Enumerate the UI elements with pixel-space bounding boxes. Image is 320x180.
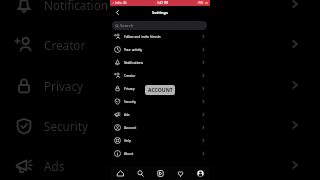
- staticText: Security: [124, 100, 136, 104]
- button[interactable]: Home: [114, 167, 126, 179]
- staticText: Account: [124, 126, 137, 130]
- staticText: Privacy: [44, 78, 83, 94]
- button[interactable]: About: [110, 147, 210, 160]
- staticText: Privacy: [124, 87, 135, 91]
- staticText: Help: [124, 139, 131, 143]
- staticText: ACCOUNT: [148, 87, 173, 94]
- staticText: India: [115, 1, 122, 5]
- staticText: Follow and invite friends: [124, 35, 161, 39]
- button[interactable]: Search: [112, 21, 207, 30]
- button[interactable]: Security: [110, 95, 210, 108]
- button[interactable]: Help: [110, 134, 210, 147]
- staticText: 4G: [123, 1, 127, 5]
- button[interactable]: Follow and invite friends: [110, 30, 210, 43]
- staticText: Ads: [124, 113, 130, 117]
- staticText: Settings: [152, 10, 168, 15]
- staticText: 75%: [198, 1, 204, 5]
- staticText: Notifications: [44, 0, 114, 13]
- button[interactable]: Activity: [174, 167, 186, 179]
- button[interactable]: Profile: [194, 167, 206, 179]
- button[interactable]: Privacy: [110, 82, 210, 95]
- staticText: Your activity: [124, 48, 143, 52]
- button[interactable]: Reels: [154, 167, 166, 179]
- staticText: Creator: [124, 74, 136, 78]
- staticText: Notifications: [124, 61, 143, 65]
- button[interactable]: Notifications: [110, 56, 210, 69]
- button[interactable]: Account: [110, 121, 210, 134]
- button[interactable]: Creator: [110, 69, 210, 82]
- staticText: Search: [120, 23, 134, 29]
- staticText: Security: [44, 118, 88, 134]
- staticText: Ads: [44, 158, 65, 174]
- button[interactable]: Your activity: [110, 43, 210, 56]
- button[interactable]: Back: [112, 7, 122, 17]
- button[interactable]: Search: [134, 167, 146, 179]
- button[interactable]: Ads: [110, 108, 210, 121]
- staticText: About: [124, 152, 134, 156]
- staticText: Creator: [44, 37, 86, 53]
- staticText: 2:47 PM: [157, 1, 169, 5]
